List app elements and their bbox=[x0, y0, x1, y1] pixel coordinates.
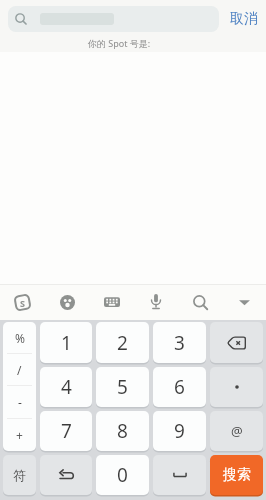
button[interactable]: 3 bbox=[153, 322, 206, 363]
button[interactable]: 1 bbox=[40, 322, 92, 363]
staticText: 3 bbox=[174, 330, 185, 356]
staticText: 搜索 bbox=[223, 466, 251, 484]
staticText: + bbox=[16, 427, 23, 443]
staticText: - bbox=[18, 394, 22, 410]
staticText: 符 bbox=[13, 467, 26, 483]
staticText: S bbox=[20, 297, 25, 309]
staticText: 6 bbox=[174, 374, 185, 400]
button[interactable]: % bbox=[3, 322, 36, 353]
button[interactable] bbox=[134, 284, 178, 320]
staticText: 8 bbox=[117, 418, 128, 444]
button[interactable]: 取消 bbox=[230, 10, 258, 28]
button[interactable] bbox=[90, 284, 134, 320]
button[interactable]: S bbox=[0, 284, 45, 320]
button[interactable] bbox=[40, 455, 92, 495]
button[interactable] bbox=[222, 284, 266, 320]
button[interactable]: 搜索 bbox=[210, 455, 263, 495]
button[interactable]: 2 bbox=[96, 322, 149, 363]
button[interactable]: 4 bbox=[40, 367, 92, 407]
button[interactable]: + bbox=[3, 419, 36, 451]
button[interactable]: 符 bbox=[3, 455, 36, 495]
button[interactable] bbox=[45, 284, 90, 320]
staticText: / bbox=[17, 362, 22, 378]
staticText: 1 bbox=[61, 330, 72, 356]
staticText: 取消 bbox=[230, 10, 258, 28]
button[interactable]: 8 bbox=[96, 411, 149, 451]
button[interactable]: - bbox=[3, 386, 36, 418]
staticText: 你的 Spot 号是: bbox=[88, 37, 151, 49]
staticText: 5 bbox=[117, 374, 128, 400]
button[interactable]: @ bbox=[210, 411, 263, 451]
button[interactable]: 5 bbox=[96, 367, 149, 407]
button[interactable] bbox=[153, 455, 206, 495]
staticText: @ bbox=[231, 422, 243, 440]
button[interactable] bbox=[8, 6, 219, 32]
staticText: 9 bbox=[174, 418, 185, 444]
button[interactable] bbox=[210, 322, 263, 363]
button[interactable]: 0 bbox=[96, 455, 149, 495]
staticText: 7 bbox=[61, 418, 72, 444]
button[interactable]: / bbox=[3, 354, 36, 385]
staticText: 0 bbox=[117, 462, 128, 488]
staticText: % bbox=[15, 330, 25, 346]
button[interactable]: 7 bbox=[40, 411, 92, 451]
staticText: 2 bbox=[117, 330, 128, 356]
button[interactable]: 6 bbox=[153, 367, 206, 407]
staticText: 4 bbox=[61, 374, 72, 400]
button[interactable]: 9 bbox=[153, 411, 206, 451]
button[interactable] bbox=[178, 284, 222, 320]
button[interactable] bbox=[210, 367, 263, 407]
